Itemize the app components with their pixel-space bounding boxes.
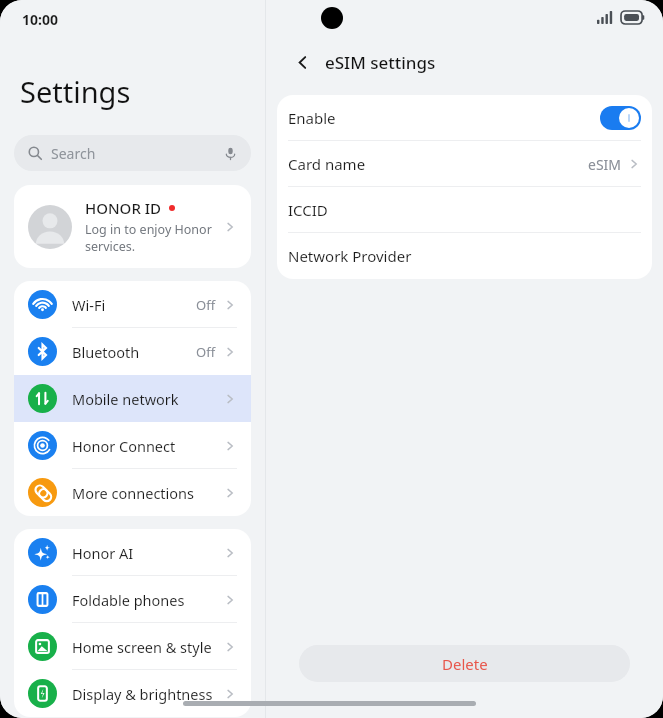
button[interactable]: ICCID [277, 187, 652, 233]
button[interactable]: Network Provider [277, 233, 652, 279]
button[interactable]: Display & brightness [14, 670, 251, 717]
button[interactable]: Back [288, 48, 316, 76]
button[interactable]: Enable [277, 95, 652, 141]
button[interactable]: Enable toggle [600, 106, 641, 130]
button[interactable]: Foldable phones [14, 576, 251, 623]
staticText: Log in to enjoy Honor services. [85, 221, 212, 255]
staticText: 10:00 [22, 10, 58, 29]
staticText: Foldable phones [72, 590, 185, 610]
staticText: Honor Connect [72, 436, 176, 456]
staticText: Delete [442, 654, 488, 674]
staticText: Card name [288, 154, 366, 174]
staticText: HONOR ID [85, 198, 162, 218]
staticText: Network Provider [288, 246, 412, 266]
staticText: eSIM [588, 155, 622, 174]
button[interactable]: Bluetooth [14, 328, 251, 375]
button[interactable]: Mobile network [14, 375, 251, 422]
button[interactable]: Search [14, 135, 251, 171]
button[interactable]: Delete [299, 645, 630, 682]
staticText: Mobile network [72, 389, 179, 409]
button[interactable]: Honor AI [14, 529, 251, 576]
staticText: eSIM settings [325, 51, 436, 74]
staticText: Wi-Fi [72, 295, 106, 315]
staticText: Off [196, 343, 216, 361]
staticText: Enable [288, 108, 336, 128]
staticText: ICCID [288, 200, 328, 220]
button[interactable]: Wi-Fi [14, 281, 251, 328]
button[interactable]: Home screen & style [14, 623, 251, 670]
button[interactable]: HONOR ID [14, 185, 251, 268]
staticText: Home screen & style [72, 637, 212, 657]
staticText: More connections [72, 483, 195, 503]
staticText: Honor AI [72, 543, 134, 563]
button[interactable]: Card name [277, 141, 652, 187]
staticText: Off [196, 296, 216, 314]
staticText: Search [51, 144, 96, 163]
button[interactable]: Honor Connect [14, 422, 251, 469]
staticText: Display & brightness [72, 684, 213, 704]
staticText: Settings [20, 72, 131, 111]
button[interactable]: More connections [14, 469, 251, 516]
staticText: Bluetooth [72, 342, 140, 362]
